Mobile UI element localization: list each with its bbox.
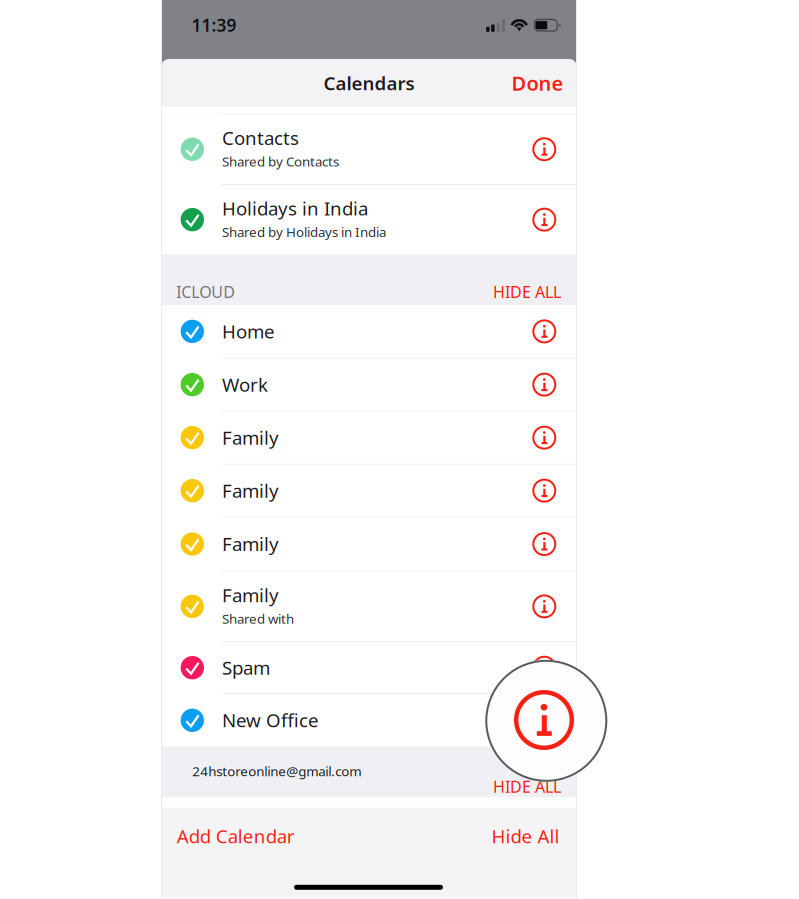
staticText: 11:39 <box>191 13 236 36</box>
staticText: Contacts <box>222 125 299 150</box>
staticText: Holidays in India <box>222 196 368 221</box>
staticText: Hide All <box>491 824 559 848</box>
button[interactable]: Spam <box>161 642 577 693</box>
staticText: Add Calendar <box>177 824 295 848</box>
staticText: New Office <box>222 708 319 732</box>
button[interactable]: Family <box>161 411 577 464</box>
button[interactable]: Family <box>161 465 577 516</box>
staticText: Work <box>222 372 268 397</box>
button[interactable]: HIDE ALL <box>441 283 561 301</box>
staticText: Spam <box>222 655 270 680</box>
button[interactable]: HIDE ALL <box>441 778 561 796</box>
staticText: Family <box>222 582 279 607</box>
button[interactable]: Contacts <box>161 114 577 184</box>
staticText: Home <box>222 319 275 344</box>
staticText: Family <box>222 425 279 450</box>
button[interactable]: Hide All <box>439 824 559 848</box>
staticText: Family <box>222 478 279 503</box>
staticText: ICLOUD <box>176 281 235 302</box>
staticText: Shared with <box>222 610 294 627</box>
button[interactable]: Home <box>161 305 577 358</box>
staticText: Family <box>222 531 279 556</box>
button[interactable]: Family <box>161 572 577 641</box>
button[interactable]: Work <box>161 359 577 410</box>
staticText: Shared by Holidays in India <box>222 223 386 241</box>
staticText: 24hstoreonline@gmail.com <box>192 762 361 780</box>
button[interactable]: Family <box>161 517 577 571</box>
button[interactable]: Add Calendar <box>177 824 337 848</box>
staticText: Shared by Contacts <box>222 153 339 170</box>
button[interactable]: Holidays in India <box>161 185 577 254</box>
button[interactable]: Done <box>483 59 563 107</box>
button[interactable]: New Office <box>161 694 577 746</box>
staticText: Calendars <box>323 71 414 95</box>
staticText: HIDE ALL <box>493 281 561 302</box>
staticText: Done <box>511 70 563 96</box>
staticText: HIDE ALL <box>493 776 561 797</box>
